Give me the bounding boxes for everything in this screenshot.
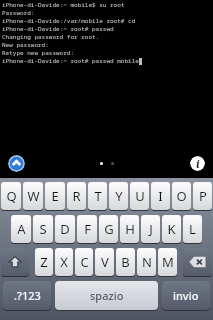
staticText: U	[135, 187, 145, 205]
staticText: Y	[115, 187, 123, 205]
staticText: K	[167, 220, 176, 238]
staticText: I	[158, 187, 163, 205]
staticText: N	[142, 253, 152, 271]
staticText: W	[27, 187, 40, 205]
button[interactable]: L	[183, 215, 202, 243]
button[interactable]: B	[116, 248, 135, 276]
staticText: L	[189, 220, 196, 238]
button[interactable]: X	[55, 248, 73, 276]
button[interactable]: V	[95, 248, 114, 276]
staticText: M	[162, 253, 174, 271]
staticText: V	[101, 253, 109, 271]
staticText: spazio	[90, 288, 124, 303]
button[interactable]: E	[45, 182, 65, 210]
button[interactable]: Scroll up	[8, 155, 25, 172]
button[interactable]: T	[88, 182, 107, 210]
staticText: iPhone-di-Davide:/var/mobile root# cd	[2, 17, 136, 25]
staticText: .?123	[14, 288, 41, 303]
button[interactable]: C	[75, 248, 93, 276]
staticText: D	[60, 220, 70, 238]
button[interactable]: Q	[1, 182, 21, 210]
staticText: R	[72, 187, 81, 205]
staticText: P	[199, 187, 207, 205]
button[interactable]: Y	[109, 182, 128, 210]
staticText: S	[39, 220, 47, 238]
button[interactable]: Z	[35, 248, 53, 276]
button[interactable]: R	[67, 182, 86, 210]
button[interactable]: Shift	[1, 248, 29, 276]
button[interactable]: Info	[190, 156, 205, 171]
staticText: O	[176, 187, 187, 205]
staticText: iPhone-di-Davide:~ root# passwd	[2, 25, 114, 33]
button[interactable]: spazio	[55, 281, 158, 310]
button[interactable]: K	[162, 215, 181, 243]
button[interactable]: W	[23, 182, 43, 210]
staticText: J	[149, 220, 153, 238]
button[interactable]: H	[120, 215, 139, 243]
button[interactable]: G	[99, 215, 118, 243]
staticText: T	[94, 187, 102, 205]
staticText: Password:	[2, 9, 35, 17]
staticText: iPhone-di-Davide:~ mobile$ su root	[2, 1, 125, 9]
staticText: H	[125, 220, 135, 238]
staticText: C	[80, 253, 89, 271]
button[interactable]: invio	[162, 281, 210, 310]
staticText: X	[60, 253, 68, 271]
button[interactable]: M	[158, 248, 177, 276]
staticText: B	[121, 253, 130, 271]
button[interactable]: N	[137, 248, 156, 276]
staticText: E	[51, 187, 59, 205]
button[interactable]: D	[55, 215, 75, 243]
staticText: New password:	[2, 41, 49, 49]
staticText: i	[196, 157, 200, 171]
button[interactable]: A	[11, 215, 31, 243]
staticText: G	[104, 220, 114, 238]
staticText: F	[84, 220, 91, 238]
staticText: Q	[6, 187, 17, 205]
button[interactable]: J	[141, 215, 160, 243]
button[interactable]: O	[172, 182, 191, 210]
staticText: A	[17, 220, 26, 238]
staticText: iPhone-di-Davide:~ root# passwd mobile	[2, 57, 139, 65]
staticText: Z	[40, 253, 48, 271]
button[interactable]: Backspace	[183, 248, 212, 276]
staticText: invio	[173, 288, 199, 303]
button[interactable]: .?123	[3, 281, 51, 310]
button[interactable]: I	[151, 182, 170, 210]
staticText: Retype new password:	[2, 49, 75, 57]
staticText: Changing password for root.	[2, 33, 100, 41]
button[interactable]: F	[77, 215, 97, 243]
button[interactable]: S	[33, 215, 53, 243]
button[interactable]: U	[130, 182, 149, 210]
button[interactable]: P	[193, 182, 212, 210]
